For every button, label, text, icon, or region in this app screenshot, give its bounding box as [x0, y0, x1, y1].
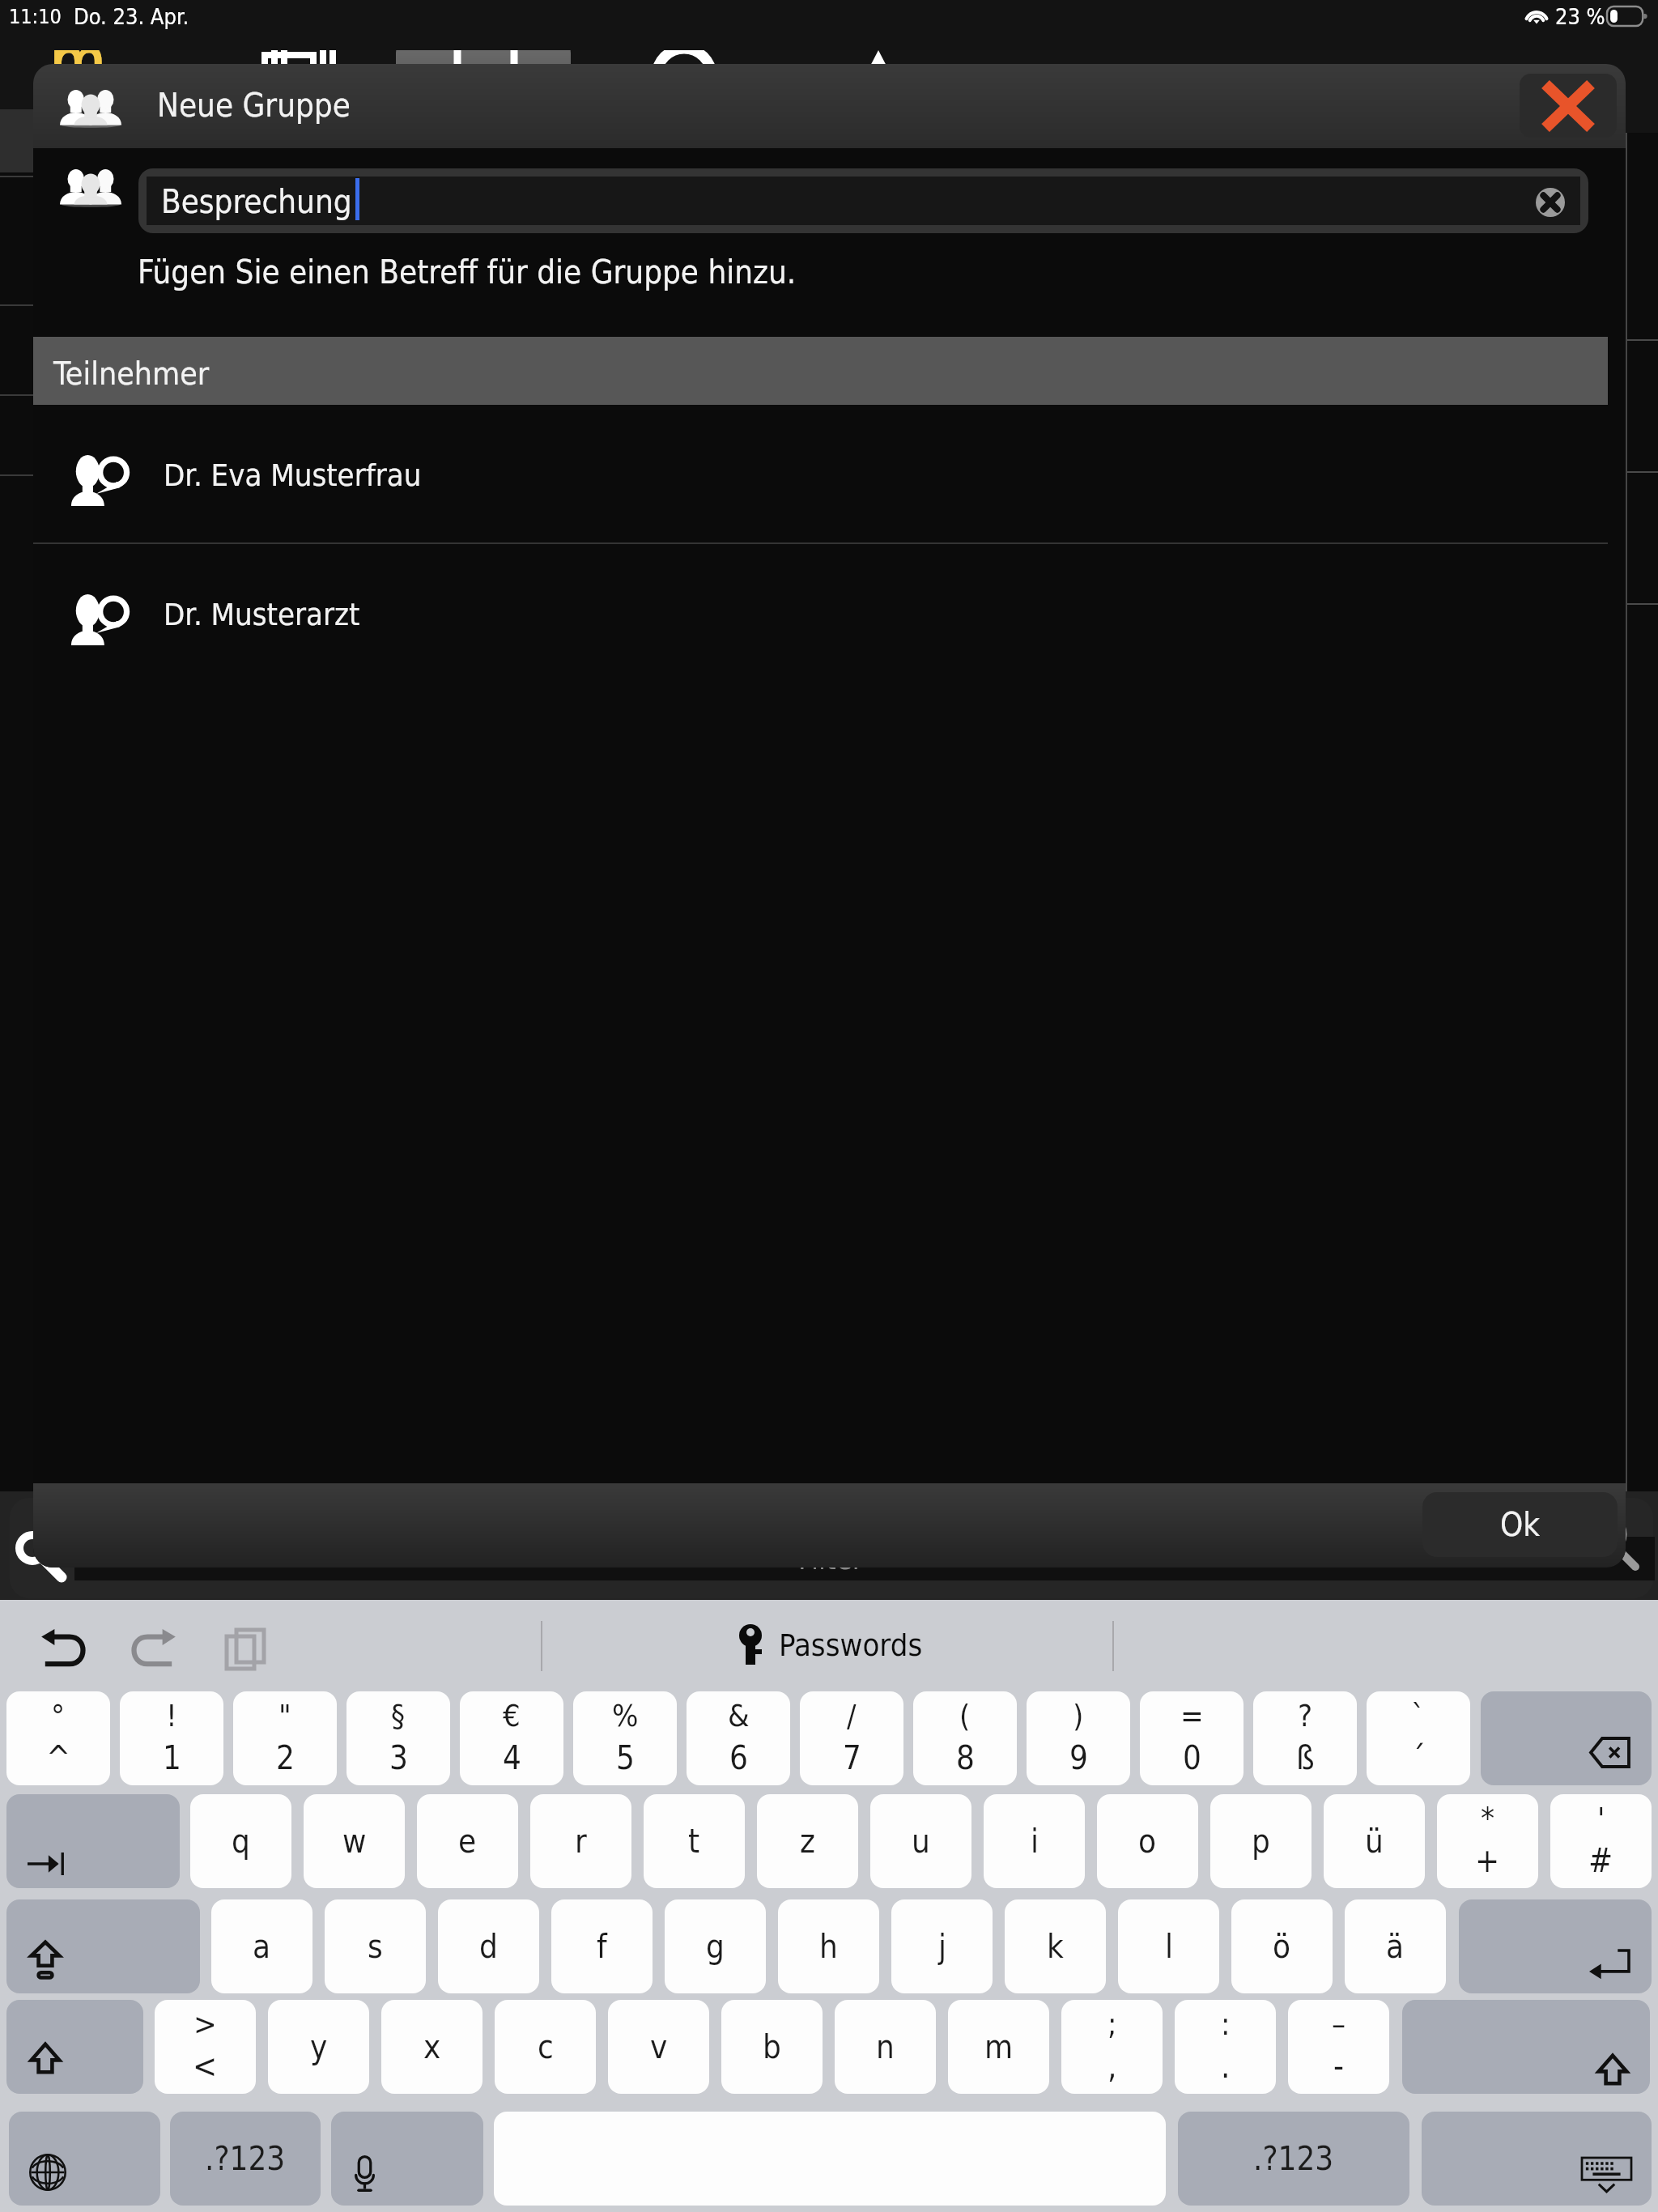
- button[interactable]: a: [211, 1899, 312, 1993]
- button[interactable]: t: [644, 1794, 745, 1888]
- button[interactable]: u: [870, 1794, 971, 1888]
- staticText: `: [1411, 1698, 1426, 1733]
- button[interactable]: /: [800, 1691, 903, 1785]
- button[interactable]: ä: [1345, 1899, 1446, 1993]
- button[interactable]: =: [1140, 1691, 1243, 1785]
- staticText: a: [253, 1928, 271, 1966]
- button[interactable]: *: [1437, 1794, 1538, 1888]
- staticText: =: [1180, 1698, 1204, 1733]
- button[interactable]: x: [381, 2000, 483, 2094]
- button[interactable]: z: [757, 1794, 858, 1888]
- staticText: ": [278, 1698, 291, 1733]
- button[interactable]: Ok: [1422, 1492, 1618, 1557]
- button[interactable]: r: [530, 1794, 631, 1888]
- staticText: +: [1475, 1842, 1500, 1880]
- button[interactable]: Einfügen: [225, 1628, 267, 1670]
- button[interactable]: d: [438, 1899, 539, 1993]
- button[interactable]: globe: [9, 2112, 160, 2206]
- staticText: :: [1221, 2006, 1231, 2042]
- staticText: €: [503, 1698, 521, 1733]
- staticText: Filter: [798, 1542, 863, 1576]
- button[interactable]: Besprechung: [147, 177, 1580, 225]
- button[interactable]: e: [417, 1794, 518, 1888]
- button[interactable]: w: [304, 1794, 405, 1888]
- staticText: ß: [1296, 1739, 1315, 1777]
- button[interactable]: caps: [6, 1899, 200, 1993]
- staticText: n: [876, 2028, 895, 2066]
- button[interactable]: l: [1118, 1899, 1219, 1993]
- staticText: t: [688, 1823, 700, 1861]
- button[interactable]: >: [155, 2000, 256, 2094]
- button[interactable]: ): [1027, 1691, 1130, 1785]
- staticText: Ok: [1500, 1506, 1541, 1544]
- button[interactable]: i: [984, 1794, 1085, 1888]
- button[interactable]: k: [1005, 1899, 1106, 1993]
- button[interactable]: bksp: [1481, 1691, 1652, 1785]
- staticText: &: [728, 1698, 750, 1733]
- staticText: l: [1165, 1928, 1173, 1966]
- button[interactable]: §: [346, 1691, 450, 1785]
- button[interactable]: b: [721, 2000, 823, 2094]
- staticText: w: [342, 1823, 367, 1861]
- button[interactable]: Dr. Musterarzt: [33, 544, 1626, 682]
- button[interactable]: p: [1210, 1794, 1312, 1888]
- staticText: b: [763, 2028, 781, 2066]
- button[interactable]: Rückgängig: [40, 1628, 87, 1667]
- button[interactable]: &: [687, 1691, 790, 1785]
- staticText: 3: [389, 1739, 408, 1777]
- button[interactable]: ': [1550, 1794, 1652, 1888]
- button[interactable]: g: [665, 1899, 766, 1993]
- staticText: 0: [1183, 1739, 1201, 1777]
- button[interactable]: Passwords: [737, 1623, 923, 1668]
- button[interactable]: €: [460, 1691, 563, 1785]
- button[interactable]: :: [1175, 2000, 1276, 2094]
- button[interactable]: h: [778, 1899, 879, 1993]
- button[interactable]: %: [573, 1691, 677, 1785]
- button[interactable]: Schliessen: [1520, 74, 1617, 138]
- button[interactable]: f: [551, 1899, 653, 1993]
- button[interactable]: s: [325, 1899, 426, 1993]
- button[interactable]: y: [268, 2000, 369, 2094]
- staticText: 6: [729, 1739, 748, 1777]
- staticText: Besprechung: [161, 183, 352, 221]
- staticText: Fügen Sie einen Betreff für die Gruppe h…: [138, 253, 797, 291]
- staticText: <: [193, 2048, 218, 2086]
- staticText: ^: [46, 1739, 71, 1777]
- button[interactable]: Dr. Eva Musterfrau: [33, 405, 1626, 542]
- button[interactable]: Wiederholen: [130, 1628, 176, 1667]
- button[interactable]: °: [6, 1691, 110, 1785]
- button[interactable]: o: [1097, 1794, 1198, 1888]
- button[interactable]: mic: [331, 2112, 483, 2206]
- button[interactable]: .?123: [1178, 2112, 1409, 2206]
- button[interactable]: m: [948, 2000, 1049, 2094]
- button[interactable]: ?: [1253, 1691, 1357, 1785]
- button[interactable]: .?123: [170, 2112, 321, 2206]
- button[interactable]: ö: [1231, 1899, 1333, 1993]
- staticText: 5: [616, 1739, 635, 1777]
- button[interactable]: ü: [1324, 1794, 1425, 1888]
- staticText: 23 %: [1555, 4, 1605, 29]
- button[interactable]: q: [190, 1794, 291, 1888]
- button[interactable]: kbd: [1422, 2112, 1652, 2206]
- staticText: ,: [1107, 2048, 1117, 2086]
- staticText: (: [959, 1698, 971, 1733]
- button[interactable]: j: [891, 1899, 993, 1993]
- button[interactable]: `: [1367, 1691, 1470, 1785]
- button[interactable]: n: [835, 2000, 936, 2094]
- staticText: Teilnehmer: [53, 355, 210, 392]
- button[interactable]: shift: [6, 2000, 143, 2094]
- button[interactable]: v: [608, 2000, 709, 2094]
- button[interactable]: (: [913, 1691, 1017, 1785]
- button[interactable]: ;: [1061, 2000, 1163, 2094]
- staticText: m: [50, 24, 106, 98]
- button[interactable]: –: [1288, 2000, 1389, 2094]
- button[interactable]: ": [233, 1691, 337, 1785]
- button[interactable]: !: [120, 1691, 223, 1785]
- button[interactable]: ret: [1459, 1899, 1652, 1993]
- staticText: o: [1138, 1823, 1157, 1861]
- button[interactable]: shiftR: [1402, 2000, 1650, 2094]
- button[interactable]: tab: [6, 1794, 180, 1888]
- staticText: p: [1252, 1823, 1270, 1861]
- button[interactable]: c: [495, 2000, 596, 2094]
